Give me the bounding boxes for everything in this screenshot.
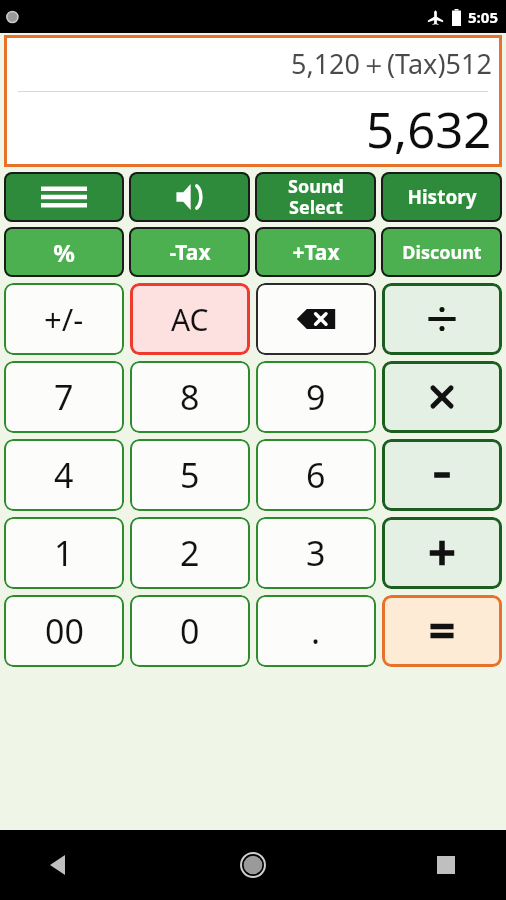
button[interactable]: Sound [129, 172, 250, 222]
button[interactable]: 00 [4, 595, 124, 667]
staticText: 8 [180, 374, 200, 420]
button[interactable]: Discount [381, 227, 502, 277]
staticText: 5 [180, 452, 200, 498]
staticText: Discount [402, 240, 482, 265]
staticText: 0 [180, 608, 200, 654]
button[interactable]: History [381, 172, 502, 222]
staticText: 6 [306, 452, 326, 498]
button[interactable]: Backspace [256, 283, 376, 355]
button[interactable]: 1 [4, 517, 124, 589]
button[interactable]: 7 [4, 361, 124, 433]
button[interactable]: . [256, 595, 376, 667]
button[interactable]: Equals [382, 595, 502, 667]
button[interactable]: % [4, 227, 124, 277]
staticText: 5:05 [468, 7, 498, 27]
button[interactable]: +Tax [255, 227, 376, 277]
button[interactable]: Menu [4, 172, 124, 222]
staticText: 5,120＋(Tax)512 [291, 45, 492, 82]
staticText: 3 [306, 530, 326, 576]
button[interactable]: 2 [130, 517, 250, 589]
button[interactable]: Minus [382, 439, 502, 511]
staticText: History [407, 184, 477, 210]
button[interactable]: 6 [256, 439, 376, 511]
staticText: AC [171, 299, 209, 340]
staticText: % [53, 236, 75, 269]
button[interactable]: Multiply [382, 361, 502, 433]
staticText: -Tax [169, 238, 211, 267]
button[interactable]: +/- [4, 283, 124, 355]
button[interactable]: 3 [256, 517, 376, 589]
button[interactable]: Home [229, 841, 277, 889]
staticText: +Tax [292, 238, 340, 267]
button[interactable]: 0 [130, 595, 250, 667]
staticText: 2 [180, 530, 200, 576]
staticText: Sound Select [288, 174, 344, 220]
button[interactable]: Divide [382, 283, 502, 355]
button[interactable]: 8 [130, 361, 250, 433]
staticText: 9 [306, 374, 326, 420]
staticText: 5,632 [366, 96, 492, 163]
button[interactable]: AC [130, 283, 250, 355]
staticText: 4 [54, 452, 74, 498]
button[interactable]: 9 [256, 361, 376, 433]
button[interactable]: Sound Select [255, 172, 376, 222]
button[interactable]: Back [36, 841, 84, 889]
button[interactable]: -Tax [129, 227, 250, 277]
button[interactable]: 5 [130, 439, 250, 511]
staticText: . [311, 608, 321, 654]
staticText: 1 [54, 530, 74, 576]
button[interactable]: 4 [4, 439, 124, 511]
staticText: +/- [44, 298, 84, 340]
button[interactable]: Plus [382, 517, 502, 589]
button[interactable]: Recents [422, 841, 470, 889]
staticText: 7 [54, 374, 74, 420]
staticText: 00 [45, 608, 84, 654]
